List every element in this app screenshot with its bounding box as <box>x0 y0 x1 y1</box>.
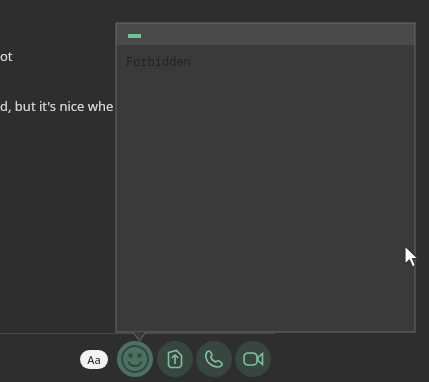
button[interactable]: Text formatting <box>80 350 108 369</box>
staticText: Aa <box>87 352 101 367</box>
button[interactable]: Voice call <box>196 341 232 377</box>
staticText: d, but it's nice whe <box>0 97 114 115</box>
button[interactable]: Stickers and emoji <box>117 341 153 377</box>
button[interactable]: Video call <box>235 341 271 377</box>
button[interactable]: Send file <box>157 341 193 377</box>
staticText: ot <box>0 47 13 65</box>
staticText: Forbidden <box>126 53 191 69</box>
